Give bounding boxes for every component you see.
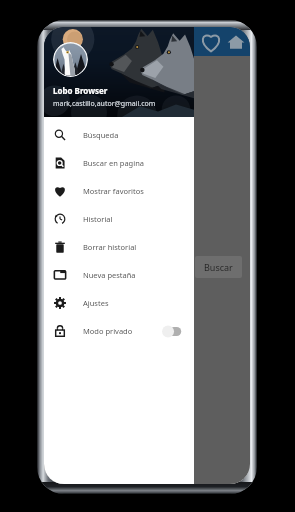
button[interactable]: Inicio [226, 32, 246, 52]
button[interactable]: Búsqueda [44, 121, 194, 149]
staticText: mark,castillo,autor@gmail.com [53, 99, 156, 109]
button[interactable]: Mostrar favoritos [44, 177, 194, 205]
staticText: Buscar en pagina [83, 158, 144, 168]
button[interactable]: Modo privado [161, 325, 183, 338]
button[interactable]: Ajustes [44, 289, 194, 317]
staticText: Nueva pestaña [83, 270, 136, 280]
staticText: Modo privado [83, 326, 133, 336]
staticText: Búsqueda [83, 130, 119, 140]
button[interactable]: Historial [44, 205, 194, 233]
button[interactable]: Borrar historial [44, 233, 194, 261]
staticText: Borrar historial [83, 242, 137, 252]
staticText: Lobo Browser [53, 85, 108, 96]
button[interactable]: Buscar en pagina [44, 149, 194, 177]
button[interactable]: Modo privado [44, 317, 194, 345]
button[interactable]: Favoritos [201, 32, 221, 52]
staticText: Mostrar favoritos [83, 186, 144, 196]
staticText: Ajustes [83, 298, 109, 308]
staticText: Buscar [204, 261, 233, 273]
button[interactable]: Buscar [195, 256, 242, 278]
button[interactable]: Nueva pestaña [44, 261, 194, 289]
button[interactable]: Perfil [53, 42, 88, 77]
staticText: Historial [83, 214, 113, 224]
